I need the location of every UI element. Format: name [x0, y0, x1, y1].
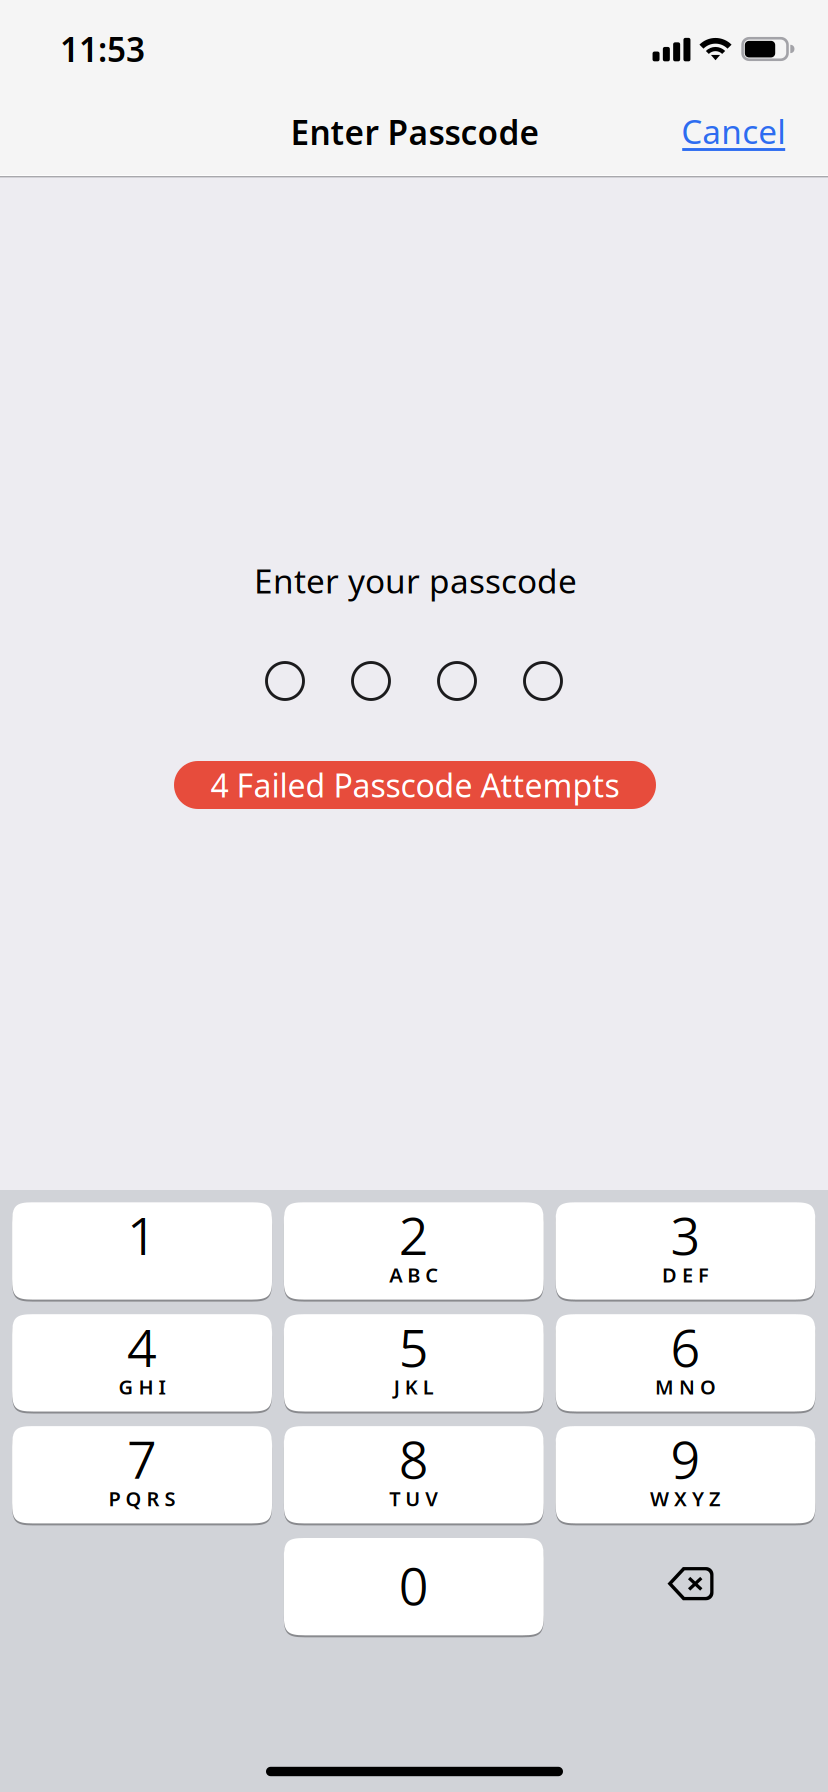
button[interactable]: Cancel: [670, 101, 798, 173]
staticText: 11:53: [60, 27, 145, 71]
staticText: D E F: [662, 1261, 709, 1288]
staticText: Cancel: [681, 109, 786, 153]
staticText: 6: [670, 1311, 700, 1382]
staticText: 8: [399, 1423, 429, 1494]
staticText: T U V: [389, 1485, 438, 1512]
staticText: 7: [127, 1423, 157, 1494]
button[interactable]: 8: [284, 1425, 544, 1524]
staticText: 4 Failed Passcode Attempts: [210, 764, 619, 806]
staticText: 5: [399, 1311, 429, 1382]
staticText: 0: [399, 1550, 429, 1620]
staticText: G H I: [119, 1373, 166, 1400]
staticText: 4: [127, 1311, 157, 1382]
staticText: J K L: [394, 1373, 434, 1400]
button[interactable]: Delete: [555, 1538, 815, 1635]
button[interactable]: 4: [12, 1313, 272, 1412]
staticText: 3: [670, 1199, 700, 1270]
staticText: 1: [127, 1199, 157, 1270]
button[interactable]: 5: [284, 1313, 544, 1412]
button[interactable]: 7: [12, 1425, 272, 1524]
staticText: 2: [399, 1199, 429, 1270]
button[interactable]: 2: [284, 1201, 544, 1301]
staticText: A B C: [389, 1261, 438, 1288]
staticText: P Q R S: [109, 1485, 176, 1512]
staticText: M N O: [655, 1373, 716, 1400]
button[interactable]: 3: [555, 1201, 815, 1301]
staticText: Enter Passcode: [290, 110, 539, 154]
staticText: W X Y Z: [650, 1485, 721, 1512]
button[interactable]: 0: [284, 1537, 544, 1636]
button[interactable]: 1: [12, 1201, 272, 1301]
staticText: Enter your passcode: [254, 558, 577, 603]
staticText: 9: [670, 1423, 700, 1494]
button[interactable]: 6: [555, 1313, 815, 1412]
button[interactable]: 9: [555, 1425, 815, 1524]
